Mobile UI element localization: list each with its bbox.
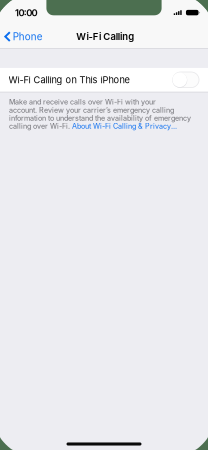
button[interactable]: Wi-Fi Calling on This iPhone (0, 68, 208, 92)
staticText: Wi-Fi Calling (76, 31, 134, 42)
staticText: Wi-Fi Calling on This iPhone (9, 74, 130, 85)
staticText: Phone (13, 31, 43, 43)
staticText: account. Review your carrier’s emergency… (9, 106, 174, 114)
button[interactable]: Phone (0, 25, 49, 48)
staticText: information to understand the availabili… (9, 114, 191, 122)
staticText: About Wi-Fi Calling & Privacy... (72, 122, 177, 131)
staticText: Make and receive calls over Wi-Fi with y… (9, 98, 156, 106)
button[interactable]: About Wi-Fi Calling & Privacy... (72, 122, 177, 131)
staticText: calling over Wi-Fi. (9, 122, 72, 131)
staticText: 10:00 (15, 7, 37, 19)
